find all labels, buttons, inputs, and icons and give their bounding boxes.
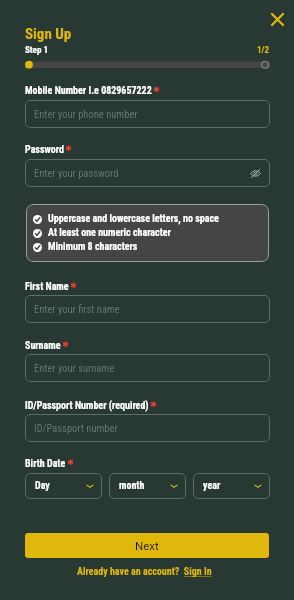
button[interactable]: Enter your first name bbox=[25, 295, 270, 323]
button[interactable]: Next bbox=[25, 533, 269, 558]
staticText: ID/Passport Number (required) bbox=[25, 400, 149, 412]
button[interactable]: year bbox=[193, 473, 270, 499]
button[interactable]: Already have an account? Sign In bbox=[77, 566, 212, 578]
staticText: Sign Up bbox=[25, 25, 72, 43]
staticText: 1/2 bbox=[257, 45, 270, 56]
staticText: Birth Date bbox=[25, 458, 66, 470]
staticText: Uppercase and lowercase letters, no spac… bbox=[48, 213, 219, 225]
staticText: Step 1 bbox=[25, 45, 49, 56]
other: Show password bbox=[250, 168, 261, 179]
staticText: Password bbox=[25, 144, 64, 156]
button[interactable]: Close bbox=[265, 7, 290, 32]
staticText: At least one numeric character bbox=[48, 227, 171, 239]
button[interactable]: ID/Passport number bbox=[25, 414, 270, 442]
button[interactable]: Day bbox=[25, 473, 102, 499]
staticText: Next bbox=[135, 539, 159, 552]
button[interactable]: Enter your surname bbox=[25, 354, 270, 382]
staticText: Enter your password bbox=[34, 167, 119, 179]
staticText: Surname bbox=[25, 340, 61, 352]
staticText: Minimum 8 characters bbox=[48, 241, 138, 253]
staticText: ID/Passport number bbox=[34, 422, 118, 434]
button[interactable]: Enter your password bbox=[25, 159, 270, 187]
staticText: year bbox=[203, 480, 221, 492]
staticText: month bbox=[119, 480, 145, 492]
button[interactable]: Enter your phone number bbox=[25, 100, 270, 128]
staticText: Mobile Number I.e 0829657222 bbox=[25, 85, 152, 97]
staticText: Day bbox=[35, 480, 50, 492]
staticText: First Name bbox=[25, 281, 69, 293]
staticText: Enter your phone number bbox=[34, 108, 138, 120]
staticText: Enter your surname bbox=[34, 362, 115, 374]
staticText: Enter your first name bbox=[34, 303, 120, 315]
button[interactable]: month bbox=[109, 473, 186, 499]
